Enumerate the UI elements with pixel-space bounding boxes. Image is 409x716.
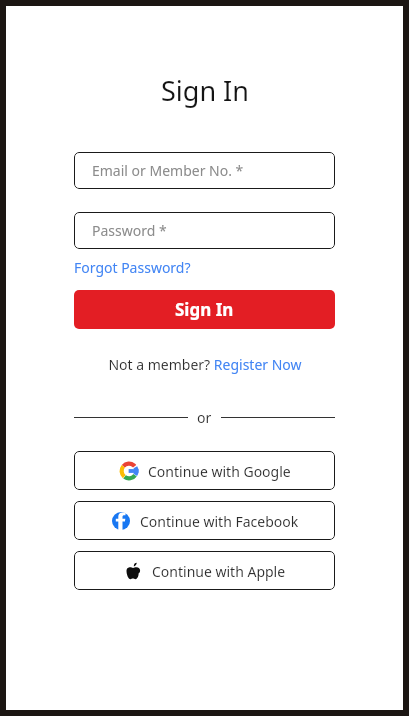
staticText: or <box>197 408 212 427</box>
staticText: Continue with Facebook <box>140 512 299 531</box>
staticText: Continue with Google <box>148 462 291 481</box>
staticText: Sign In <box>161 72 249 109</box>
staticText: Not a member? Register Now <box>108 355 302 374</box>
staticText: Sign In <box>175 298 234 321</box>
button[interactable]: Sign In <box>74 290 335 329</box>
button[interactable]: Continue with Apple <box>74 551 335 590</box>
button[interactable]: Continue with Facebook <box>74 501 335 540</box>
button[interactable]: Password * <box>74 212 335 249</box>
staticText: Password * <box>92 221 167 240</box>
button[interactable]: Email or Member No. * <box>74 152 335 189</box>
button[interactable]: Forgot Password? <box>74 258 191 277</box>
button[interactable]: Not a member? Register Now <box>6 355 403 374</box>
button[interactable]: Continue with Google <box>74 451 335 490</box>
staticText: Email or Member No. * <box>92 161 244 180</box>
staticText: Continue with Apple <box>152 562 286 581</box>
staticText: Forgot Password? <box>74 258 191 277</box>
